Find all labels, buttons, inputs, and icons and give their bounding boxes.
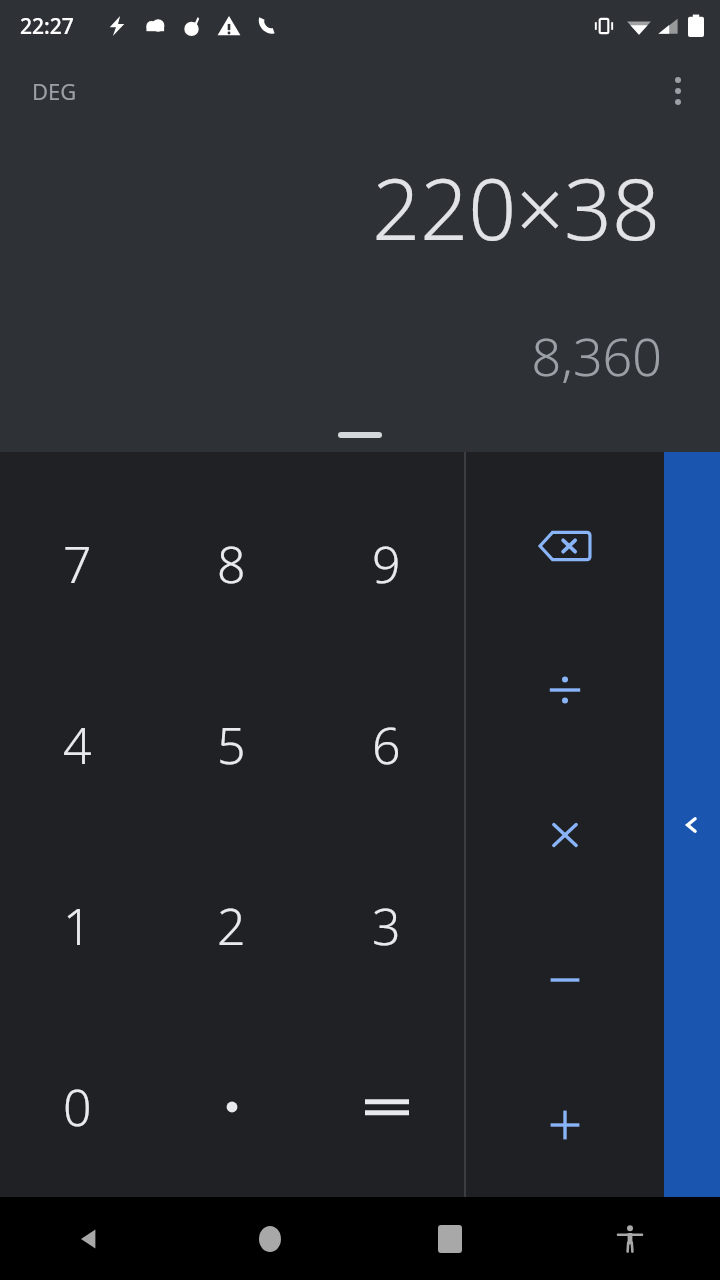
button[interactable]: 6 [309, 654, 464, 835]
staticText: 22:27 [20, 12, 74, 41]
button[interactable]: Multiply [466, 762, 664, 907]
button[interactable] [338, 432, 382, 438]
button[interactable]: 4 [0, 654, 154, 835]
staticText: 9 [372, 530, 401, 598]
button[interactable]: Add [466, 1052, 664, 1197]
staticText: 6 [372, 711, 401, 779]
button[interactable]: 5 [154, 654, 309, 835]
staticText: 4 [63, 711, 92, 779]
staticText: 2 [217, 892, 246, 960]
staticText: 8,360 [531, 320, 662, 391]
staticText: 220×38 [372, 150, 660, 264]
staticText: DEG [32, 76, 77, 106]
button[interactable]: Home [180, 1197, 360, 1280]
button[interactable]: Backspace [466, 474, 664, 618]
staticText: 5 [217, 711, 246, 779]
button[interactable]: 8 [154, 474, 309, 654]
button[interactable]: Recent apps [360, 1197, 540, 1280]
button[interactable]: 1 [0, 835, 154, 1016]
staticText: 3 [372, 892, 401, 960]
button[interactable]: Open history [664, 452, 720, 1197]
button[interactable]: DEG [26, 70, 83, 112]
button[interactable]: 9 [309, 474, 464, 654]
staticText: 1 [63, 892, 92, 960]
staticText: 7 [63, 530, 92, 598]
button[interactable]: Subtract [466, 907, 664, 1052]
button[interactable]: More options [654, 67, 702, 115]
staticText: 0 [63, 1073, 92, 1141]
staticText: 8 [217, 530, 246, 598]
button[interactable]: 7 [0, 474, 154, 654]
button[interactable] [309, 1016, 464, 1197]
button[interactable]: Accessibility [540, 1197, 720, 1280]
button[interactable]: 0 [0, 1016, 154, 1197]
button[interactable]: 2 [154, 835, 309, 1016]
button[interactable]: Back [0, 1197, 180, 1280]
button[interactable]: 3 [309, 835, 464, 1016]
button[interactable] [154, 1016, 309, 1197]
button[interactable]: Divide [466, 618, 664, 762]
